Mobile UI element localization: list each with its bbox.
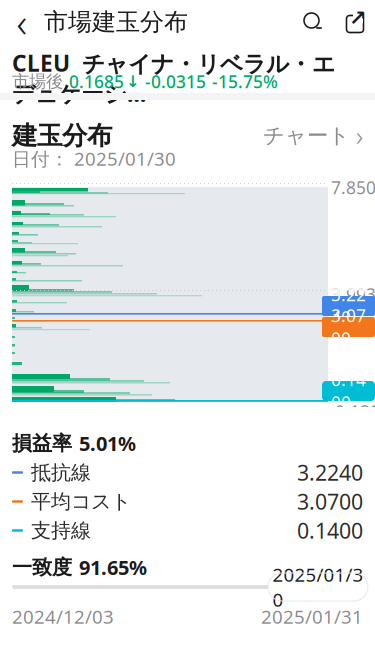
- button[interactable]: チャート: [263, 112, 363, 159]
- staticText: ↗: [349, 6, 367, 30]
- staticText: CLEU チャイナ・リベラル・エデュケーシ…: [12, 48, 335, 108]
- staticText: 3.0700: [331, 304, 366, 350]
- staticText: 市場後: [12, 71, 63, 92]
- staticText: ›: [356, 118, 363, 153]
- staticText: 0.1300: [335, 400, 375, 446]
- staticText: 7.8500: [331, 176, 375, 199]
- staticText: 0.1400: [297, 516, 363, 545]
- staticText: 建玉分布: [12, 120, 112, 151]
- button[interactable]: Share: [335, 0, 375, 44]
- staticText: 5.01%: [79, 430, 136, 457]
- staticText: 3.9930: [331, 283, 375, 306]
- staticText: -15.75%: [212, 70, 278, 93]
- staticText: 2025/01/31: [261, 604, 363, 629]
- staticText: ↓: [126, 72, 139, 91]
- staticText: 2025/01/30: [272, 562, 363, 612]
- button[interactable]: 2025/01/30: [268, 573, 368, 601]
- staticText: ‹: [16, 0, 27, 48]
- staticText: 市場建玉分布: [44, 7, 188, 37]
- staticText: 平均コスト: [31, 489, 131, 514]
- staticText: 支持線: [31, 518, 91, 543]
- staticText: 抵抗線: [31, 460, 91, 485]
- staticText: -0.0315: [145, 70, 206, 93]
- staticText: 91.65%: [79, 554, 147, 581]
- staticText: 2024/12/03: [12, 604, 114, 629]
- staticText: 日付： 2025/01/30: [12, 146, 176, 171]
- staticText: 3.2240: [297, 458, 363, 487]
- staticText: 0.1400: [331, 368, 366, 414]
- staticText: 損益率: [12, 431, 72, 456]
- button[interactable]: Back: [0, 0, 44, 44]
- staticText: 3.0700: [297, 487, 363, 516]
- staticText: チャート: [263, 123, 350, 149]
- staticText: 一致度: [12, 555, 72, 580]
- staticText: 3.2240: [331, 283, 366, 329]
- button[interactable]: Search: [291, 0, 335, 44]
- staticText: 0.1685: [69, 70, 124, 93]
